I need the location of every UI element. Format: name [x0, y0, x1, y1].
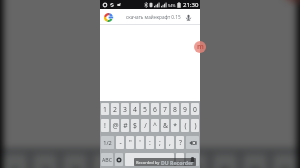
button[interactable]: 0: [191, 103, 199, 115]
button[interactable]: [125, 153, 174, 166]
staticText: (: [184, 121, 187, 130]
staticText: Recorded by: [136, 160, 160, 165]
staticText: 2: [113, 105, 117, 114]
button[interactable]: 0: [273, 154, 297, 168]
staticText: &: [163, 121, 168, 130]
staticText: 7: [163, 105, 167, 114]
button[interactable]: @: [111, 119, 119, 132]
staticText: 9: [183, 105, 187, 114]
button[interactable]: 8: [171, 103, 179, 115]
button[interactable]: -: [116, 136, 124, 149]
button[interactable]: *: [171, 119, 179, 132]
staticText: ': [139, 138, 141, 147]
staticText: ABC: [102, 156, 112, 163]
button[interactable]: /: [141, 119, 149, 132]
button[interactable]: 3: [63, 154, 87, 168]
button[interactable]: 1: [3, 154, 27, 168]
button[interactable]: 5: [141, 103, 149, 115]
staticText: #: [123, 121, 128, 130]
staticText: 0: [193, 105, 197, 114]
button[interactable]: 2: [33, 154, 57, 168]
button[interactable]: &: [161, 119, 169, 132]
staticText: !: [104, 121, 106, 130]
button[interactable]: !: [101, 119, 109, 132]
staticText: @: [112, 121, 119, 130]
button[interactable]: 5: [123, 154, 147, 168]
button[interactable]: Google: [104, 13, 113, 22]
button[interactable]: ^: [151, 119, 159, 132]
button[interactable]: 7: [161, 103, 169, 115]
staticText: :: [149, 138, 151, 147]
button[interactable]: 2: [111, 103, 119, 115]
staticText: DU Recorder: [161, 159, 194, 166]
staticText: m: [197, 42, 204, 52]
staticText: скачать майнкрафт 0.15: [126, 14, 181, 20]
button[interactable]: Backspace: [186, 136, 199, 149]
button[interactable]: 3: [121, 103, 129, 115]
staticText: /: [144, 121, 147, 130]
button[interactable]: 1: [101, 103, 109, 115]
staticText: ^: [153, 121, 157, 130]
button[interactable]: 6: [151, 103, 159, 115]
staticText: 0: [279, 160, 291, 168]
staticText: 9: [249, 160, 261, 168]
staticText: 6: [159, 160, 171, 168]
staticText: *: [173, 121, 177, 130]
staticText: ": [129, 138, 132, 147]
button[interactable]: Enter: [186, 153, 199, 166]
staticText: 1/2: [103, 139, 112, 147]
staticText: 8: [173, 105, 177, 114]
button[interactable]: Floating chat bubble: [194, 41, 206, 53]
button[interactable]: 1/2: [101, 136, 114, 149]
button[interactable]: 9: [181, 103, 189, 115]
button[interactable]: Emoji: [115, 153, 123, 166]
staticText: 6: [153, 105, 157, 114]
staticText: 1: [103, 105, 107, 114]
staticText: -: [119, 138, 122, 147]
button[interactable]: 8: [213, 154, 237, 168]
staticText: 3: [69, 160, 81, 168]
button[interactable]: .: [176, 153, 184, 166]
button[interactable]: 7: [183, 154, 207, 168]
staticText: 5: [143, 105, 147, 114]
staticText: 54%: [168, 3, 176, 8]
staticText: m: [291, 0, 300, 1]
button[interactable]: 6: [153, 154, 177, 168]
button[interactable]: ;: [156, 136, 164, 149]
staticText: ?: [179, 138, 182, 147]
staticText: 4: [133, 105, 137, 114]
staticText: .: [179, 155, 181, 164]
staticText: ): [194, 121, 197, 130]
button[interactable]: ,: [166, 136, 174, 149]
staticText: 7: [189, 160, 201, 168]
button[interactable]: ': [136, 136, 144, 149]
button[interactable]: ): [191, 119, 199, 132]
button[interactable]: (: [181, 119, 189, 132]
button[interactable]: ": [126, 136, 134, 149]
button[interactable]: 4: [131, 103, 139, 115]
staticText: 5: [129, 160, 141, 168]
staticText: $: [133, 121, 137, 130]
button[interactable]: 9: [243, 154, 267, 168]
button[interactable]: :: [146, 136, 154, 149]
button[interactable]: 4: [93, 154, 117, 168]
button[interactable]: Voice search: [185, 14, 192, 21]
button[interactable]: Floating chat bubble: [282, 0, 300, 4]
button[interactable]: $: [131, 119, 139, 132]
button[interactable]: ABC: [101, 153, 113, 166]
staticText: 21:30: [183, 1, 199, 9]
staticText: ;: [159, 138, 161, 147]
staticText: 4: [99, 160, 111, 168]
staticText: 3: [123, 105, 127, 114]
staticText: 8: [219, 160, 231, 168]
button[interactable]: ?: [176, 136, 184, 149]
button[interactable]: #: [121, 119, 129, 132]
staticText: ,: [169, 138, 171, 147]
